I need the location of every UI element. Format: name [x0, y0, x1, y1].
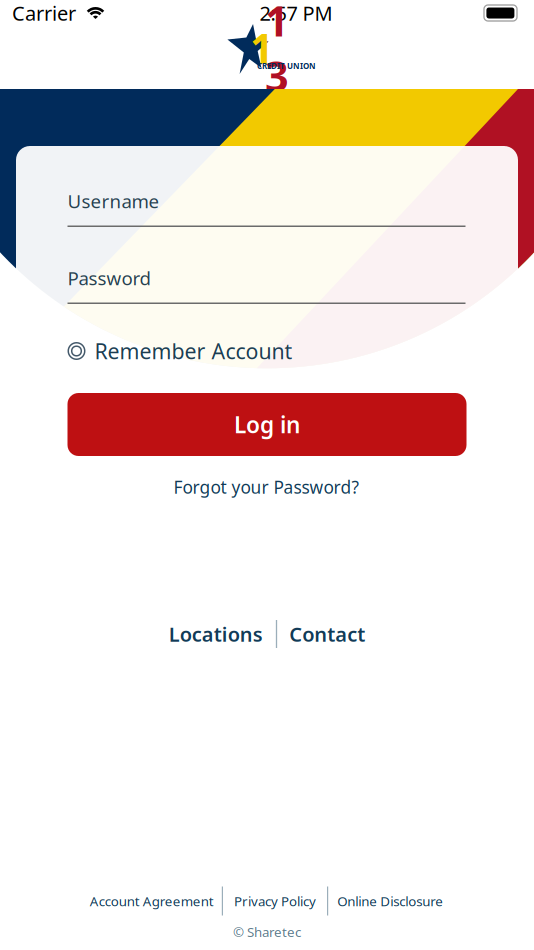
staticText: Privacy Policy	[234, 892, 316, 910]
staticText: Online Disclosure	[337, 892, 443, 910]
button[interactable]: Privacy Policy	[230, 886, 320, 916]
staticText: 2:57 PM	[259, 0, 332, 26]
button[interactable]: Log in	[67, 393, 466, 456]
staticText: Carrier	[12, 0, 76, 26]
staticText: Password	[67, 266, 150, 290]
staticText: © Sharetec	[233, 923, 301, 941]
staticText: Forgot your Password?	[173, 475, 359, 498]
staticText: 13	[265, 0, 289, 103]
staticText: 1	[250, 21, 274, 75]
staticText: Contact	[289, 621, 365, 647]
staticText: Account Agreement	[90, 892, 214, 910]
staticText: Locations	[169, 621, 263, 647]
staticText: Username	[67, 189, 159, 213]
button[interactable]: Online Disclosure	[335, 886, 445, 916]
button[interactable]: Locations	[169, 619, 263, 649]
button[interactable]: Account Agreement	[89, 886, 215, 916]
staticText: Remember Account	[94, 337, 292, 365]
staticText: Log in	[234, 409, 300, 439]
button[interactable]: Remember Account	[67, 336, 465, 366]
button[interactable]: Contact	[289, 619, 365, 649]
staticText: CREDIT UNION	[257, 61, 316, 71]
button[interactable]: Forgot your Password?	[67, 474, 465, 500]
